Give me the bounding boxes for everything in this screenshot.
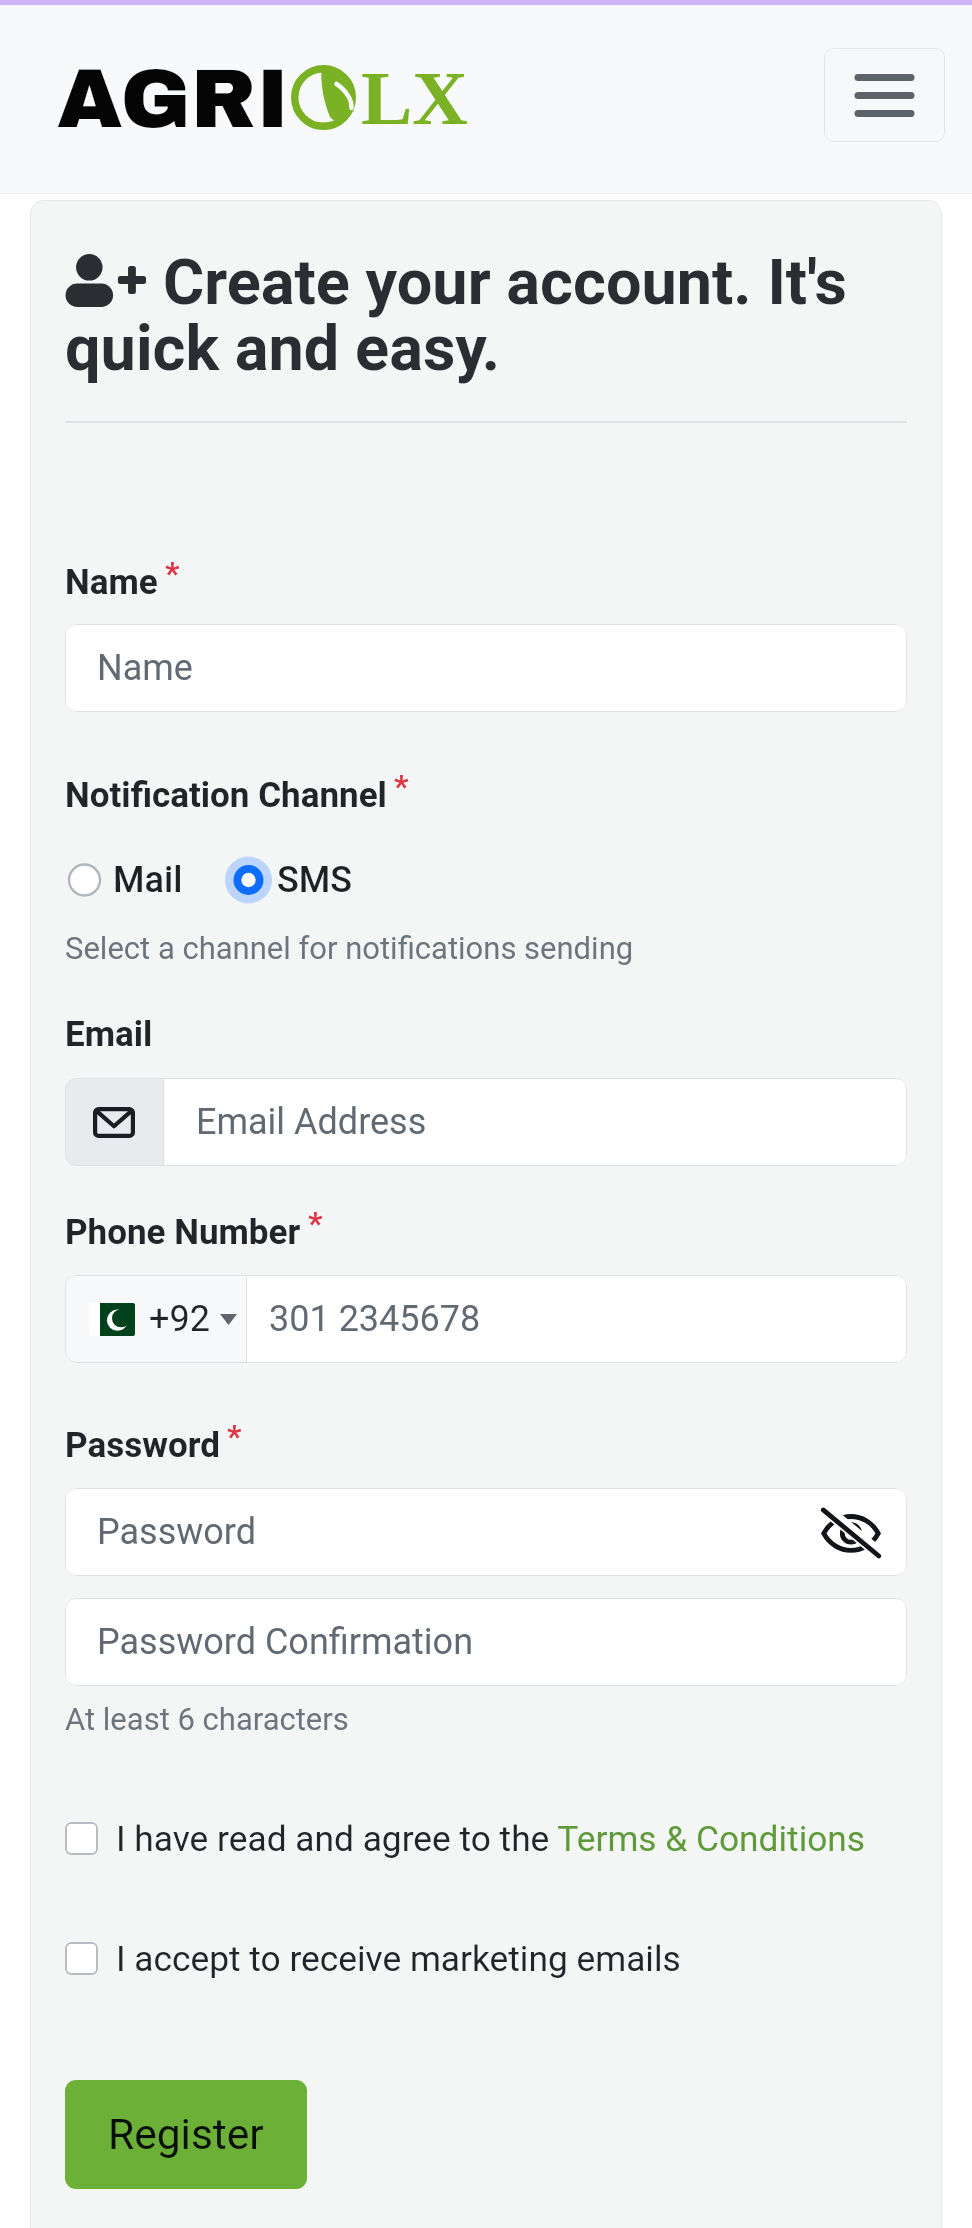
staticText: Password Confirmation <box>97 1621 474 1663</box>
staticText: +92 <box>149 1298 210 1340</box>
staticText: Password <box>97 1511 257 1553</box>
staticText: quick and easy. <box>65 312 501 377</box>
button[interactable]: Register <box>65 2080 307 2189</box>
staticText: Notification Channel <box>65 775 387 816</box>
staticText: Name <box>65 562 158 603</box>
staticText: Phone Number <box>65 1212 301 1253</box>
staticText: Create your account. It's <box>163 246 847 312</box>
staticText: Email Address <box>196 1101 427 1143</box>
staticText: Select a channel for notifications sendi… <box>65 930 634 966</box>
staticText: SMS <box>277 859 353 901</box>
staticText: * <box>308 1204 323 1242</box>
staticText: At least 6 characters <box>65 1701 349 1737</box>
button[interactable]: 301 2345678 <box>247 1275 907 1363</box>
staticText: Email <box>65 1014 153 1055</box>
button[interactable]: SMS <box>229 856 353 904</box>
button[interactable]: Password Confirmation <box>65 1598 907 1686</box>
staticText: LX <box>361 55 468 140</box>
button[interactable]: Toggle password visibility <box>813 1494 889 1570</box>
button[interactable]: Open navigation menu <box>824 48 945 142</box>
staticText: * <box>165 554 180 592</box>
staticText: Password <box>65 1425 220 1466</box>
staticText: * <box>227 1417 242 1455</box>
button[interactable]: Password <box>65 1488 907 1576</box>
button[interactable]: Select country calling code <box>65 1275 246 1363</box>
staticText: Name <box>97 647 193 689</box>
staticText: 301 2345678 <box>269 1298 481 1340</box>
staticText: I accept to receive marketing emails <box>116 1938 681 1979</box>
button[interactable]: Mail <box>65 856 183 904</box>
staticText: Register <box>108 2110 264 2160</box>
button[interactable]: AGRI <box>57 57 469 143</box>
button[interactable]: I have read and agree to the Terms & Con… <box>65 1818 907 1859</box>
staticText: Mail <box>113 859 183 901</box>
button[interactable]: Email Address <box>65 1078 907 1166</box>
button[interactable]: I accept to receive marketing emails <box>65 1938 907 1979</box>
staticText: * <box>394 767 409 805</box>
button[interactable]: Name <box>65 624 907 712</box>
staticText: AGRI <box>57 53 289 139</box>
staticText: I have read and agree to the Terms & Con… <box>116 1818 866 1859</box>
